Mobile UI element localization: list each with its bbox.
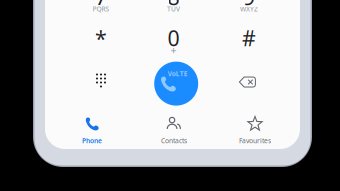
staticText: Phone — [82, 136, 102, 145]
button[interactable]: * — [69, 26, 133, 64]
button[interactable]: # — [217, 26, 281, 64]
staticText: 7 — [95, 0, 107, 11]
staticText: Favourites — [239, 136, 271, 145]
staticText: # — [242, 24, 256, 52]
staticText: * — [95, 24, 107, 52]
button[interactable]: Contacts — [136, 116, 212, 146]
button[interactable]: Call — [154, 62, 198, 106]
button[interactable]: Phone — [54, 116, 130, 146]
button[interactable]: 9 — [217, 0, 281, 23]
staticText: TUV — [167, 5, 180, 13]
button[interactable]: Backspace — [237, 75, 257, 89]
staticText: WXYZ — [240, 5, 258, 13]
staticText: VoLTE — [168, 69, 188, 78]
staticText: Contacts — [161, 136, 187, 145]
staticText: + — [170, 43, 176, 57]
button[interactable]: 7 — [69, 0, 133, 23]
button[interactable]: 8 — [141, 0, 205, 23]
staticText: 0 — [167, 24, 179, 52]
button[interactable]: 0 — [141, 26, 205, 64]
staticText: 9 — [243, 0, 255, 11]
staticText: PQRS — [92, 5, 109, 13]
button[interactable]: Favourites — [217, 116, 293, 146]
staticText: 8 — [167, 0, 179, 11]
